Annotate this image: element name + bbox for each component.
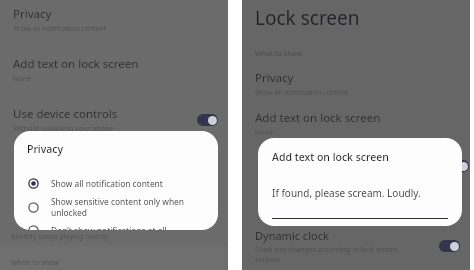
staticText: If found, please scream. Loudly. [272, 186, 421, 200]
staticText: Don’t show notifications at all [51, 225, 167, 230]
staticText: Privacy [27, 142, 63, 156]
staticText: Add text on lock screen [272, 150, 389, 164]
staticText: Identify songs playing nearby [11, 232, 109, 242]
staticText: When to show [11, 258, 59, 268]
staticText: unlocked [51, 207, 88, 218]
button[interactable]: Show all notification content [14, 174, 218, 193]
button[interactable]: Privacy [0, 0, 228, 38]
button[interactable]: Toggle setting [439, 240, 460, 252]
staticText: Use device controls [13, 106, 118, 122]
staticText: Show sensitive content only when [51, 196, 185, 207]
staticText: Privacy [13, 6, 52, 22]
staticText: Dynamic clock [255, 228, 329, 243]
staticText: Show all notification content [13, 24, 107, 34]
staticText: None [13, 74, 31, 84]
staticText: Clock size changes according to lock scr… [255, 245, 398, 255]
staticText: Show all notification content [51, 178, 163, 189]
staticText: Show all notification content [255, 88, 349, 98]
staticText: Lock screen [255, 5, 360, 31]
button[interactable]: Use device controls [0, 88, 228, 138]
button[interactable]: Add text on lock screen [242, 110, 470, 142]
staticText: Add text on lock screen [255, 110, 381, 126]
button[interactable]: Don’t show notifications at all [14, 221, 218, 230]
staticText: Without unlocking your phone [13, 124, 114, 134]
staticText: content [255, 255, 281, 265]
button[interactable]: Privacy [242, 70, 470, 102]
staticText: What to show [255, 48, 303, 58]
button[interactable]: Toggle setting [197, 114, 218, 126]
button[interactable]: Add text on lock screen [0, 38, 228, 88]
staticText: Privacy [255, 70, 294, 86]
button[interactable]: Show sensitive content only when [14, 193, 218, 221]
staticText: None [255, 128, 273, 138]
staticText: Add text on lock screen [13, 56, 139, 72]
button[interactable]: Toggle setting [448, 160, 469, 172]
